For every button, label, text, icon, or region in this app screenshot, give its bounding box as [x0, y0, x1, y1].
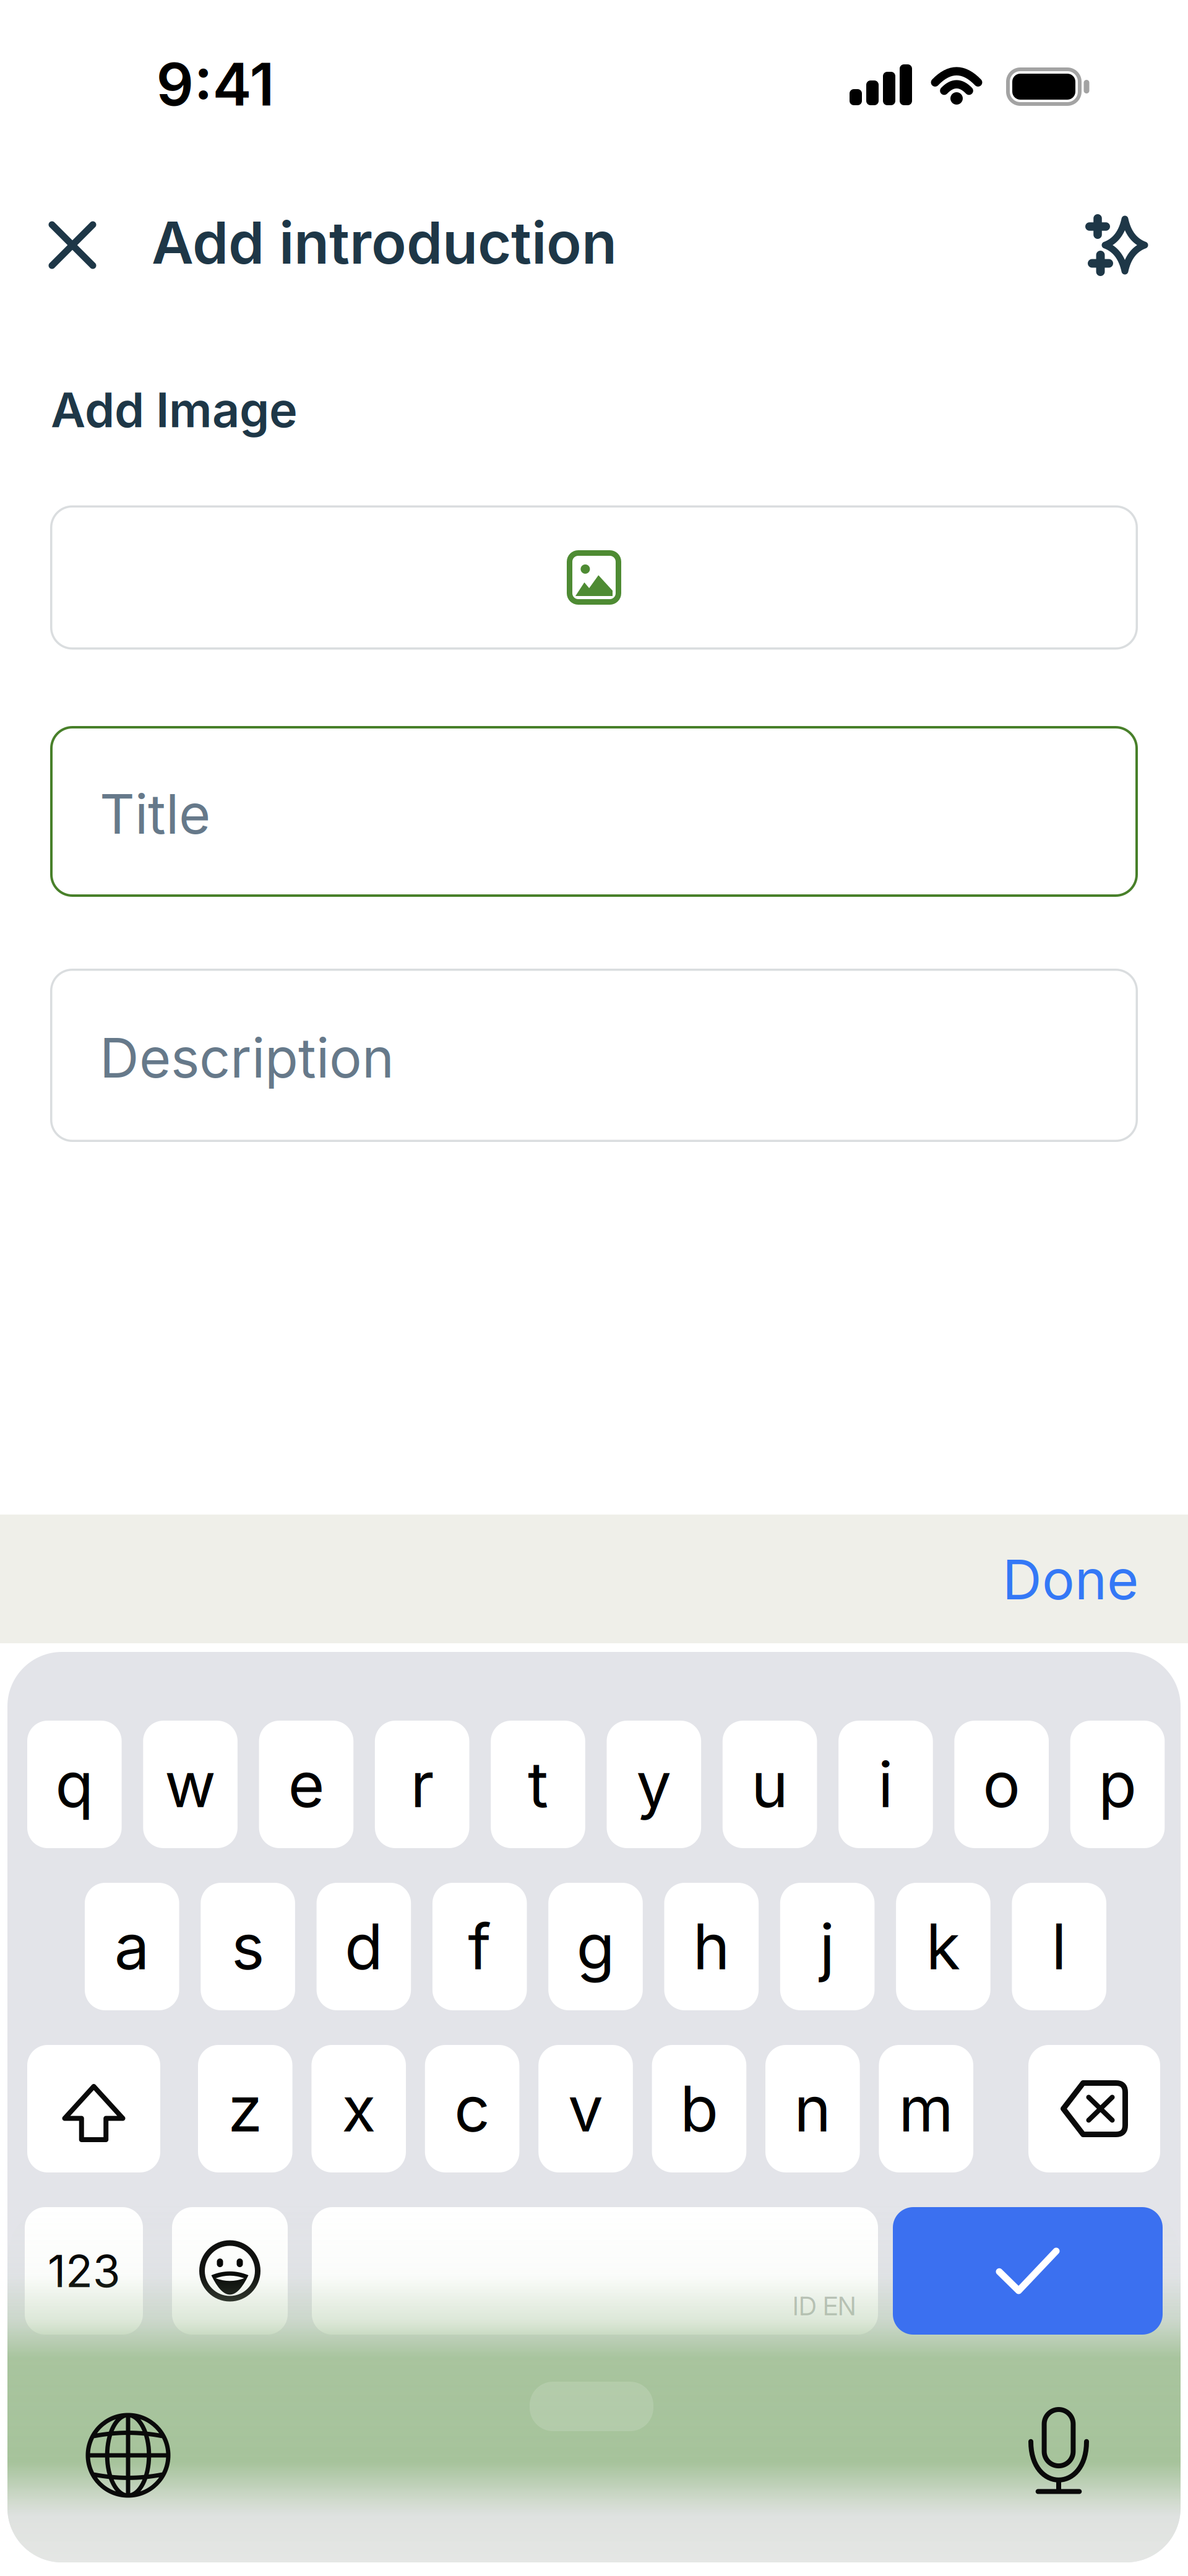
button[interactable]: t	[491, 1721, 585, 1848]
staticText: c	[454, 2072, 490, 2146]
button[interactable]: 123	[25, 2207, 143, 2335]
staticText: s	[231, 1910, 264, 1983]
staticText: p	[1098, 1747, 1137, 1821]
staticText: n	[794, 2072, 831, 2146]
staticText: w	[165, 1747, 216, 1821]
staticText: t	[528, 1747, 548, 1821]
staticText: Add introduction	[152, 209, 617, 277]
button[interactable]: q	[27, 1721, 122, 1848]
button[interactable]: n	[765, 2045, 860, 2172]
button[interactable]: m	[879, 2045, 973, 2172]
staticText: m	[899, 2072, 954, 2146]
button[interactable]: v	[538, 2045, 633, 2172]
button[interactable]: Dictate	[1025, 2403, 1093, 2501]
button[interactable]: r	[375, 1721, 469, 1848]
staticText: g	[576, 1910, 615, 1983]
button[interactable]: u	[723, 1721, 817, 1848]
staticText: ID EN	[793, 2291, 856, 2321]
button[interactable]: y	[607, 1721, 701, 1848]
button[interactable]: Done	[891, 1535, 1138, 1624]
button[interactable]: o	[954, 1721, 1049, 1848]
button[interactable]: Return	[893, 2207, 1163, 2335]
staticText: l	[1051, 1910, 1067, 1983]
staticText: e	[288, 1747, 324, 1821]
staticText: a	[114, 1910, 150, 1983]
button[interactable]: p	[1070, 1721, 1165, 1848]
staticText: v	[568, 2072, 603, 2146]
staticText: Done	[1002, 1547, 1138, 1612]
button[interactable]: g	[548, 1883, 643, 2010]
button[interactable]: Space	[312, 2207, 878, 2335]
button[interactable]: e	[259, 1721, 353, 1848]
staticText: b	[680, 2072, 718, 2146]
button[interactable]: Emoji	[172, 2207, 288, 2335]
button[interactable]: s	[201, 1883, 295, 2010]
staticText: 9:41	[156, 50, 274, 119]
staticText: f	[468, 1910, 491, 1983]
button[interactable]: Close	[38, 211, 106, 279]
staticText: k	[926, 1910, 961, 1983]
button[interactable]: f	[432, 1883, 527, 2010]
button[interactable]: b	[652, 2045, 746, 2172]
staticText: j	[820, 1910, 835, 1983]
staticText: y	[636, 1747, 672, 1821]
button[interactable]: Shift	[27, 2045, 160, 2172]
button[interactable]: Next keyboard	[82, 2409, 174, 2502]
button[interactable]: c	[425, 2045, 519, 2172]
button[interactable]: Delete	[1028, 2045, 1160, 2172]
staticText: r	[410, 1747, 434, 1821]
staticText: h	[693, 1910, 730, 1983]
button[interactable]: AI assist	[1065, 199, 1145, 280]
button[interactable]: z	[198, 2045, 292, 2172]
button[interactable]: l	[1012, 1883, 1106, 2010]
button[interactable]: j	[780, 1883, 875, 2010]
button[interactable]: h	[664, 1883, 759, 2010]
staticText: i	[878, 1747, 893, 1821]
button[interactable]: Add Image	[50, 505, 1138, 650]
button[interactable]: a	[85, 1883, 179, 2010]
button[interactable]: Description	[50, 969, 1138, 1142]
staticText: z	[228, 2072, 263, 2146]
staticText: o	[983, 1747, 1020, 1821]
button[interactable]: w	[143, 1721, 238, 1848]
staticText: x	[342, 2072, 376, 2146]
staticText: u	[751, 1747, 788, 1821]
staticText: q	[55, 1747, 94, 1821]
staticText: 123	[48, 2245, 120, 2297]
staticText: d	[345, 1910, 383, 1983]
button[interactable]: x	[311, 2045, 406, 2172]
staticText: Title	[100, 782, 210, 846]
button[interactable]: k	[896, 1883, 990, 2010]
button[interactable]: i	[838, 1721, 933, 1848]
staticText: Description	[100, 1026, 394, 1090]
button[interactable]: Title	[50, 726, 1138, 897]
staticText: Add Image	[51, 382, 298, 438]
button[interactable]: d	[317, 1883, 411, 2010]
